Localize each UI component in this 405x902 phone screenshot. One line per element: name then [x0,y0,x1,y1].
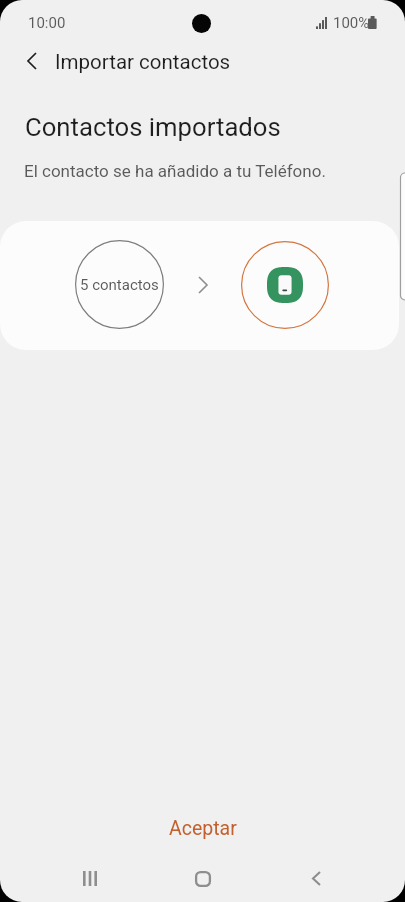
staticText: Importar contactos [55,50,231,74]
button[interactable]: Back [10,40,54,84]
button[interactable]: Back [282,855,350,902]
button[interactable]: Home [169,855,237,902]
staticText: El contacto se ha añadido a tu Teléfono. [24,161,326,181]
button[interactable]: Recent apps [56,855,124,902]
staticText: 100% [333,14,370,32]
staticText: Contactos importados [25,112,281,142]
staticText: Aceptar [169,817,237,840]
staticText: 5 contactos [80,276,159,294]
staticText: 10:00 [28,14,66,32]
button[interactable]: Aceptar [0,805,405,851]
